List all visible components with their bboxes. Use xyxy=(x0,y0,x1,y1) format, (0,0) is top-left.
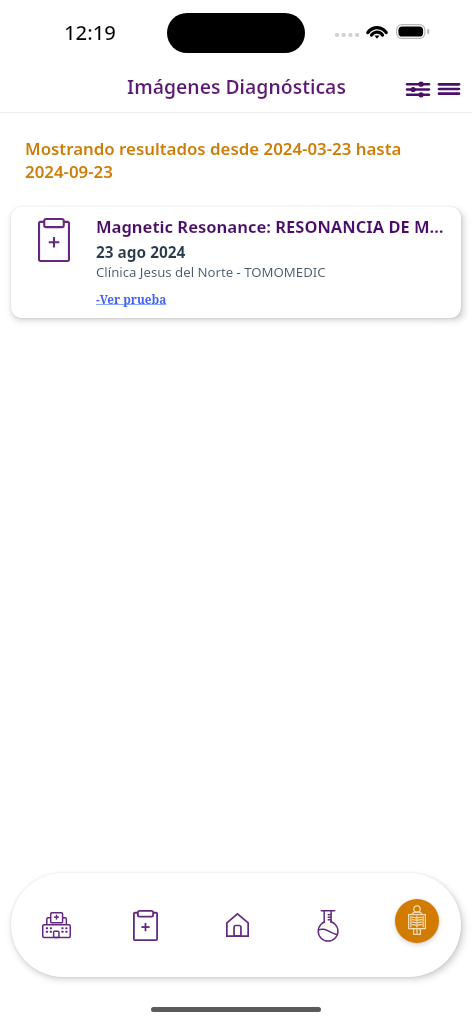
staticText: Imágenes Diagnósticas xyxy=(127,73,346,99)
button[interactable]: Laboratorio xyxy=(304,877,352,973)
button[interactable]: Imágenes diagnósticas xyxy=(395,899,439,943)
button[interactable]: Magnetic Resonance: RESONANCIA DE M… xyxy=(11,207,461,318)
staticText: Magnetic Resonance: RESONANCIA DE M… xyxy=(96,215,444,237)
staticText: 12:19 xyxy=(64,18,116,46)
button[interactable]: Inicio xyxy=(213,877,261,973)
button[interactable]: -Ver prueba xyxy=(96,291,167,307)
staticText: 23 ago 2024 xyxy=(96,242,186,263)
button[interactable]: Menú xyxy=(436,71,462,107)
button[interactable]: Centros médicos xyxy=(32,877,80,973)
button[interactable]: Consultas xyxy=(121,877,169,973)
button[interactable]: Filtros xyxy=(403,71,433,107)
staticText: Clínica Jesus del Norte - TOMOMEDIC xyxy=(96,263,326,281)
staticText: Mostrando resultados desde 2024-03-23 ha… xyxy=(25,137,410,183)
